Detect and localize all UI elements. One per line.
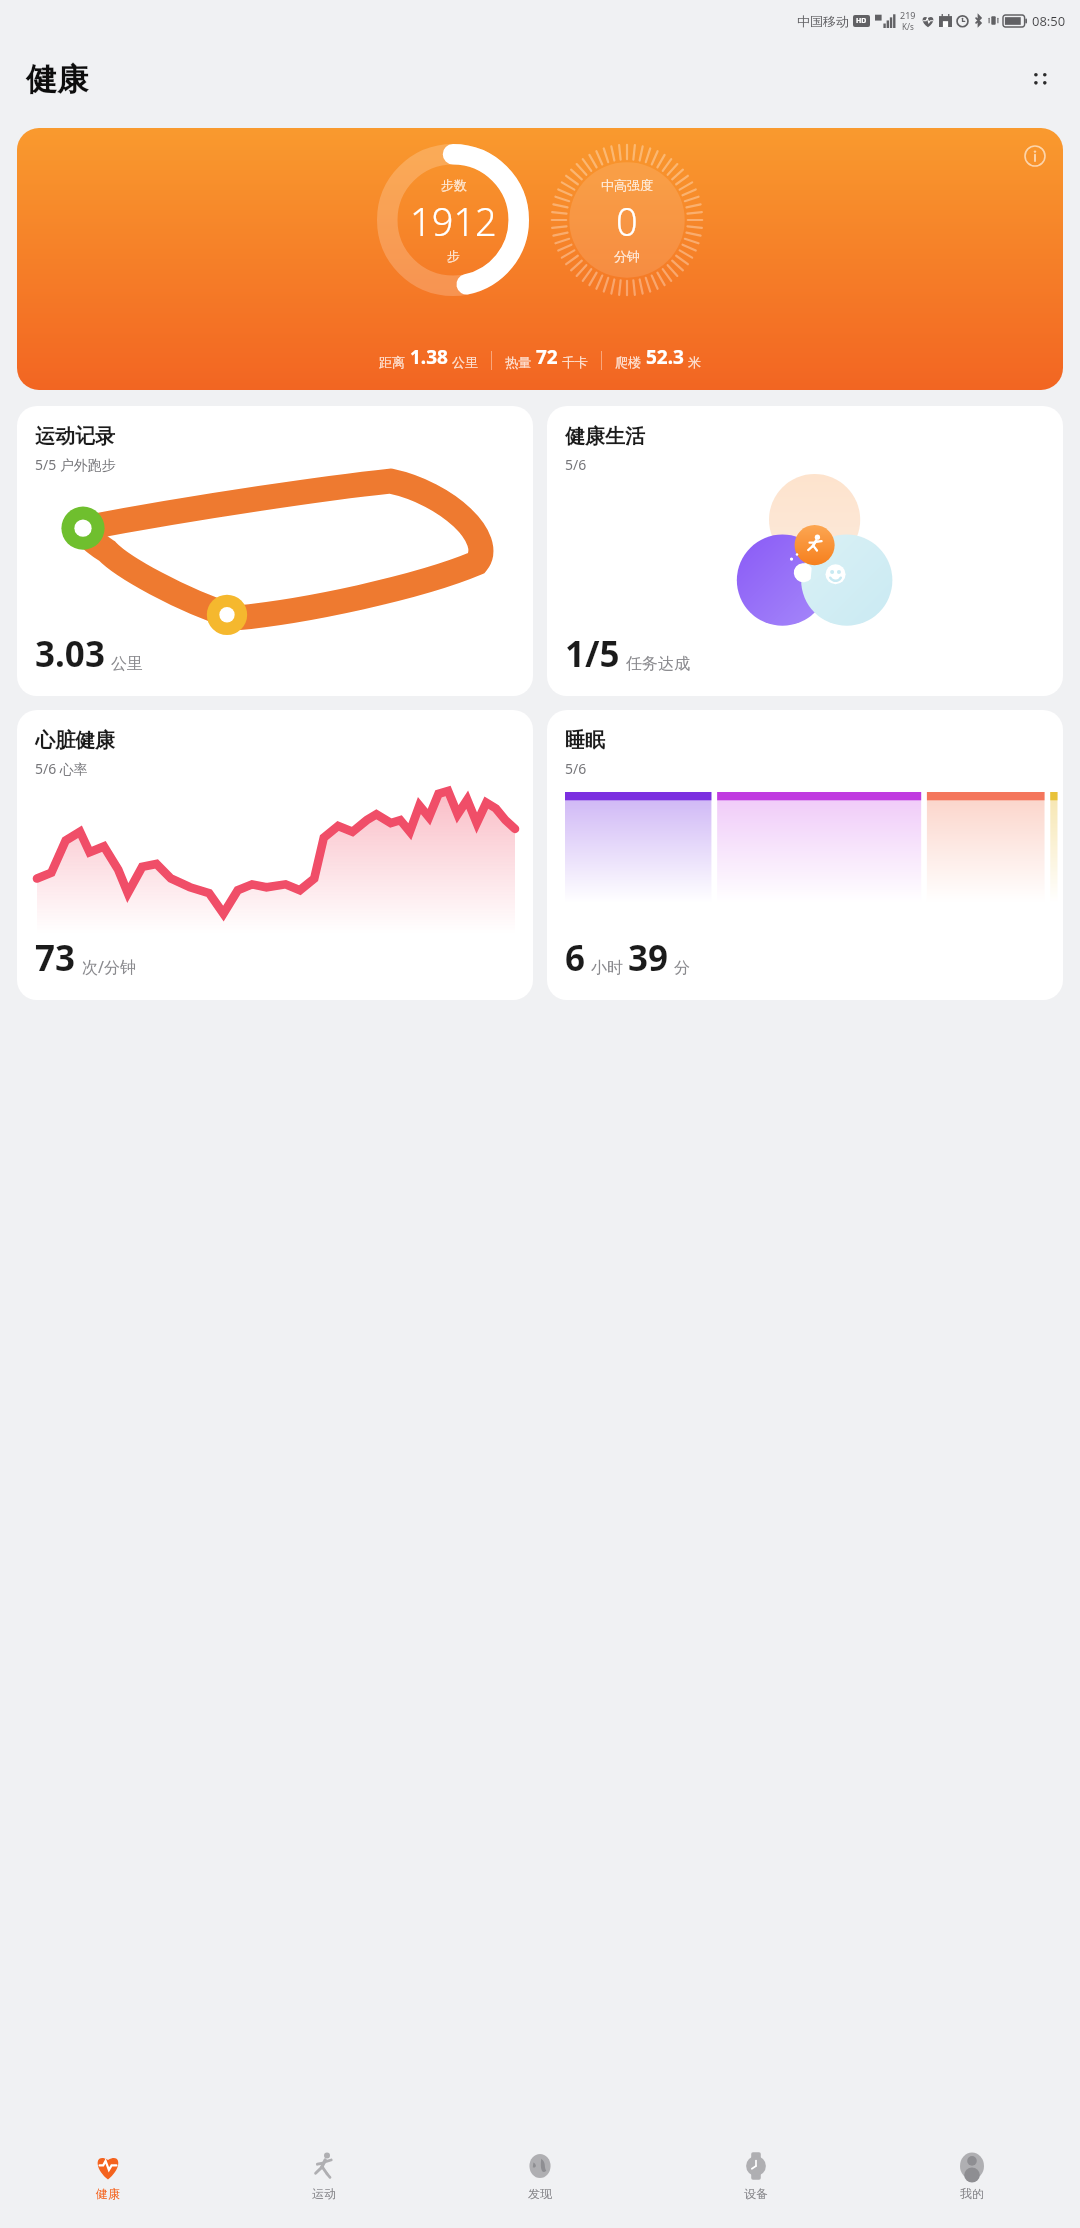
staticText: 3.03 <box>35 630 105 678</box>
button[interactable]: 运动记录 <box>17 406 533 696</box>
staticText: 设备 <box>744 2186 768 2201</box>
staticText: 分钟 <box>614 248 640 264</box>
staticText: 睡眠 <box>565 728 605 753</box>
staticText: 米 <box>688 354 701 370</box>
staticText: 心脏健康 <box>35 728 115 753</box>
button[interactable]: Information <box>1015 136 1055 176</box>
staticText: 公里 <box>111 654 143 674</box>
staticText: 219 <box>900 9 916 21</box>
staticText: 爬楼 <box>615 354 641 370</box>
staticText: 运动 <box>312 2186 336 2201</box>
staticText: 1.38 <box>410 344 448 370</box>
staticText: 5/6 <box>565 759 587 778</box>
staticText: 6 <box>565 934 586 982</box>
staticText: 发现 <box>528 2186 552 2201</box>
button[interactable]: 发现 <box>432 2124 648 2228</box>
staticText: 1912 <box>410 195 497 247</box>
button[interactable]: More options <box>1018 57 1062 101</box>
button[interactable]: 睡眠 <box>547 710 1063 1000</box>
staticText: 72 <box>536 344 558 370</box>
staticText: HD <box>856 16 867 26</box>
staticText: 分 <box>674 958 690 978</box>
staticText: 步 <box>447 248 460 264</box>
button[interactable]: 我的 <box>864 2124 1080 2228</box>
staticText: 5/6 <box>565 455 587 474</box>
staticText: 中高强度 <box>601 177 653 193</box>
staticText: 39 <box>628 934 669 982</box>
staticText: 健康 <box>26 60 88 99</box>
staticText: 步数 <box>441 177 467 193</box>
staticText: 08:50 <box>1032 12 1066 30</box>
staticText: 73 <box>35 934 76 982</box>
staticText: 中国移动 <box>797 13 849 29</box>
staticText: 任务达成 <box>626 654 690 674</box>
button[interactable]: Information <box>17 128 1063 390</box>
staticText: 小时 <box>591 958 623 978</box>
staticText: 次/分钟 <box>82 956 136 978</box>
button[interactable]: 健康生活 <box>547 406 1063 696</box>
button[interactable]: 运动 <box>216 2124 432 2228</box>
staticText: K/s <box>902 21 914 32</box>
staticText: 5/6 心率 <box>35 759 88 778</box>
staticText: 健康 <box>96 2186 120 2201</box>
staticText: 52.3 <box>646 344 684 370</box>
staticText: 运动记录 <box>35 424 115 449</box>
button[interactable]: 健康 <box>0 2124 216 2228</box>
staticText: 千卡 <box>562 354 588 370</box>
staticText: 健康生活 <box>565 424 645 449</box>
staticText: 0 <box>616 195 638 247</box>
staticText: 公里 <box>452 354 478 370</box>
button[interactable]: 设备 <box>648 2124 864 2228</box>
staticText: 5/5 户外跑步 <box>35 455 116 474</box>
button[interactable]: 心脏健康 <box>17 710 533 1000</box>
staticText: 我的 <box>960 2186 984 2201</box>
staticText: 热量 <box>505 354 531 370</box>
staticText: 1/5 <box>565 630 620 678</box>
staticText: 距离 <box>379 354 405 370</box>
